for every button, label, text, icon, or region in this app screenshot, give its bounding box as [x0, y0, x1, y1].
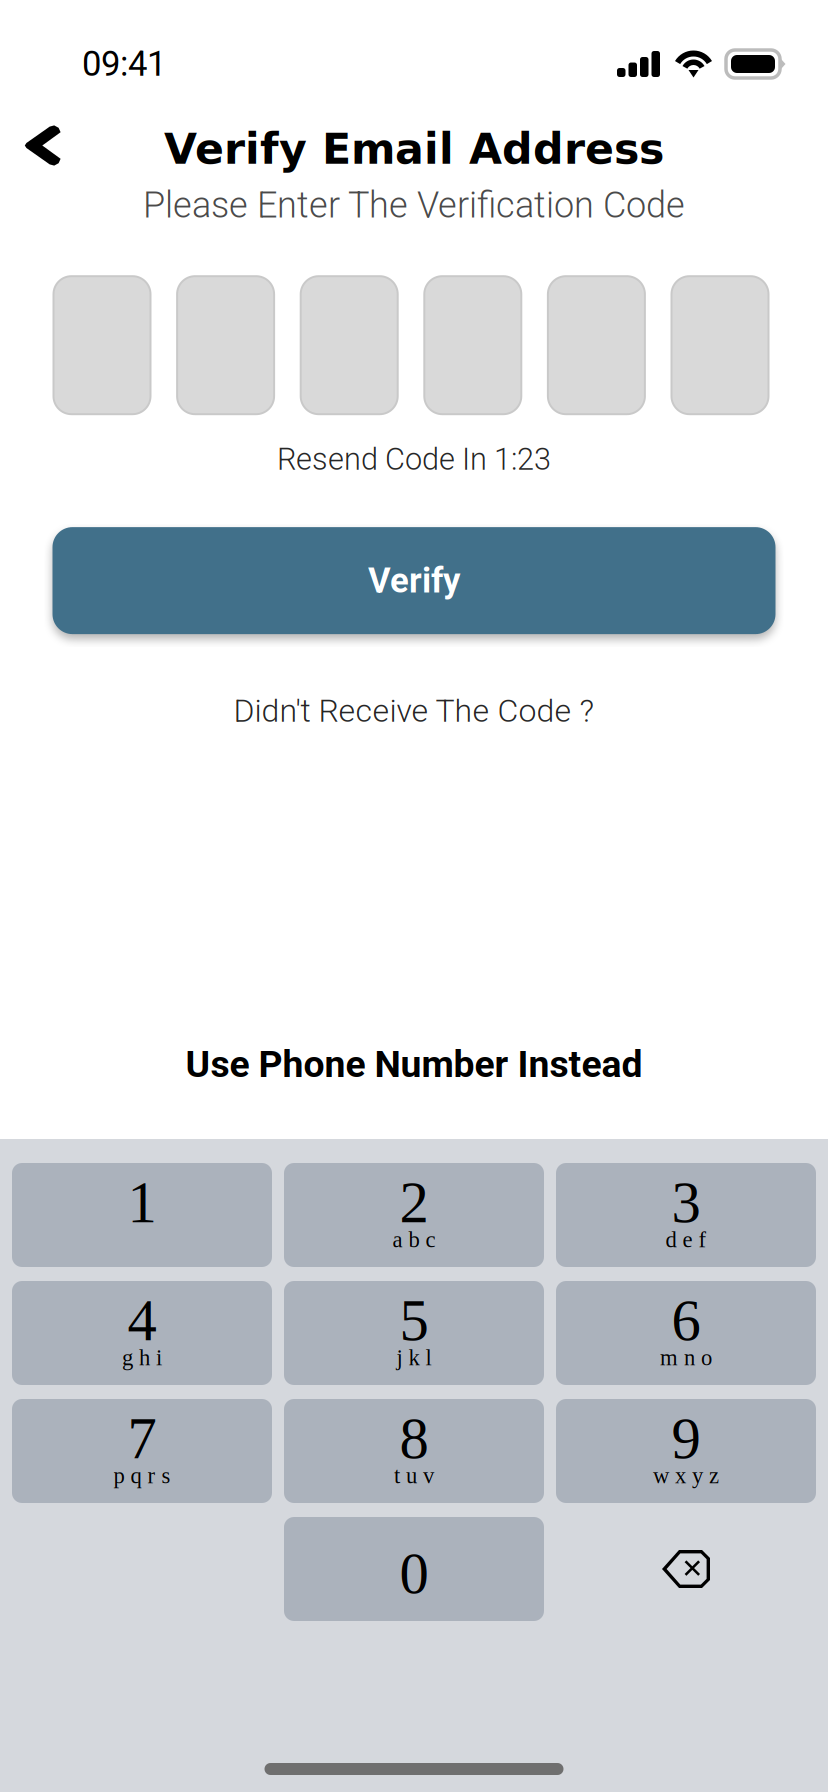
- button[interactable]: Delete: [556, 1517, 816, 1621]
- staticText: 1: [127, 1170, 156, 1235]
- staticText: Didn't Receive The Code ?: [233, 692, 594, 730]
- staticText: Please Enter The Verification Code: [143, 184, 685, 226]
- staticText: w x y z: [653, 1463, 719, 1488]
- button[interactable]: Back: [0, 116, 84, 182]
- staticText: t u v: [394, 1463, 434, 1488]
- staticText: 7: [127, 1406, 156, 1471]
- staticText: 3: [671, 1170, 700, 1235]
- button[interactable]: 7: [12, 1399, 272, 1503]
- staticText: 4: [127, 1288, 156, 1353]
- button[interactable]: Verify: [52, 527, 775, 634]
- staticText: m n o: [660, 1345, 712, 1370]
- staticText: Resend Code In 1:23: [277, 441, 551, 477]
- button[interactable]: 8: [284, 1399, 544, 1503]
- staticText: 09:41: [82, 44, 166, 84]
- staticText: 5: [399, 1288, 428, 1353]
- button[interactable]: Use Phone Number Instead: [161, 1028, 666, 1100]
- button[interactable]: 9: [556, 1399, 816, 1503]
- staticText: a b c: [392, 1227, 435, 1252]
- staticText: 2: [399, 1170, 428, 1235]
- button[interactable]: 6: [556, 1281, 816, 1385]
- button[interactable]: 4: [12, 1281, 272, 1385]
- staticText: Verify Email Address: [164, 124, 664, 174]
- staticText: g h i: [122, 1345, 162, 1370]
- staticText: 8: [399, 1406, 428, 1471]
- button[interactable]: 1: [12, 1163, 272, 1267]
- button[interactable]: 2: [284, 1163, 544, 1267]
- button[interactable]: Didn't Receive The Code ?: [209, 680, 618, 742]
- staticText: d e f: [665, 1227, 706, 1252]
- button[interactable]: 0: [284, 1517, 544, 1621]
- button[interactable]: 3: [556, 1163, 816, 1267]
- button[interactable]: 5: [284, 1281, 544, 1385]
- staticText: p q r s: [113, 1463, 170, 1488]
- staticText: 0: [399, 1541, 428, 1606]
- staticText: 9: [671, 1406, 700, 1471]
- staticText: 6: [671, 1288, 700, 1353]
- staticText: Verify: [368, 560, 460, 601]
- staticText: Use Phone Number Instead: [185, 1042, 642, 1086]
- staticText: j k l: [396, 1345, 431, 1370]
